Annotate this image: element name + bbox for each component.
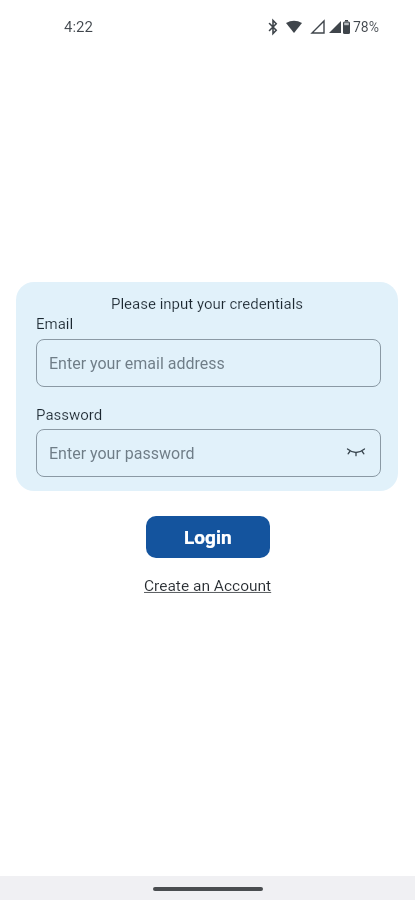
staticText: Please input your credentials xyxy=(111,295,304,313)
button[interactable]: Enter your password xyxy=(36,429,381,477)
button[interactable]: Login xyxy=(146,516,270,558)
staticText: Login xyxy=(184,526,232,548)
staticText: 4:22 xyxy=(64,18,93,36)
staticText: 78% xyxy=(353,19,379,35)
button[interactable]: Enter your email address xyxy=(36,339,381,387)
staticText: Enter your email address xyxy=(49,354,225,373)
staticText: Password xyxy=(36,406,103,424)
staticText: Email xyxy=(36,315,74,333)
button[interactable]: Create an Account xyxy=(144,577,272,595)
staticText: Enter your password xyxy=(49,444,195,463)
